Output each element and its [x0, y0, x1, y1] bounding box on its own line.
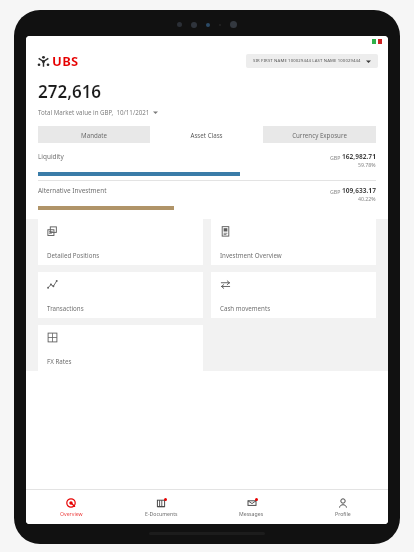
staticText: 40.22%: [358, 195, 376, 202]
staticText: GBP: [330, 188, 342, 195]
staticText: Asset Class: [190, 131, 223, 139]
other: FX Rates: [47, 332, 58, 343]
staticText: Alternative Investment: [38, 186, 107, 195]
staticText: Investment Overview: [220, 251, 282, 259]
staticText: Currency Exposure: [292, 131, 347, 139]
staticText: E-Documents: [145, 510, 178, 517]
staticText: 59.78%: [358, 161, 376, 168]
button[interactable]: Currency Exposure: [263, 126, 376, 143]
other: Transactions: [47, 279, 58, 290]
staticText: Detailed Positions: [47, 251, 100, 259]
other: UBS logo: [38, 56, 49, 67]
staticText: Messages: [239, 510, 264, 517]
other: Messages: [247, 498, 257, 508]
other: Detailed Positions: [47, 226, 58, 237]
staticText: Profile: [335, 510, 351, 517]
staticText: GBP: [330, 154, 342, 161]
other: E-Documents: [156, 498, 166, 508]
other: Overview: [66, 498, 76, 508]
staticText: 109,633.17: [342, 186, 376, 195]
staticText: 162,982.71: [342, 152, 376, 161]
staticText: Cash movements: [220, 304, 271, 312]
button[interactable]: Overview: [26, 490, 116, 524]
button[interactable]: Asset Class: [150, 126, 263, 143]
button[interactable]: Messages: [206, 490, 297, 524]
button[interactable]: E-Documents: [116, 490, 206, 524]
button[interactable]: SIR FIRST NAME 100029444 LAST NAME 10002…: [246, 54, 378, 68]
other: Cash movements: [220, 279, 231, 290]
staticText: 272,616: [38, 80, 102, 103]
button[interactable]: Cash movements: [211, 272, 376, 318]
staticText: Total Market value in GBP, 10/11/2021: [38, 108, 150, 116]
other: Profile: [338, 498, 348, 508]
staticText: Overview: [60, 510, 83, 517]
staticText: Transactions: [47, 304, 84, 312]
staticText: FX Rates: [47, 357, 72, 365]
staticText: Liquidity: [38, 152, 64, 161]
staticText: Mandate: [81, 131, 107, 139]
staticText: SIR FIRST NAME 100029444 LAST NAME 10002…: [253, 58, 361, 64]
button[interactable]: Investment Overview: [211, 219, 376, 265]
staticText: UBS: [52, 52, 79, 70]
button[interactable]: Profile: [297, 490, 388, 524]
button[interactable]: FX Rates: [38, 325, 203, 371]
button[interactable]: Detailed Positions: [38, 219, 203, 265]
other: Investment Overview: [220, 226, 231, 237]
button[interactable]: Transactions: [38, 272, 203, 318]
button[interactable]: Mandate: [38, 126, 150, 143]
